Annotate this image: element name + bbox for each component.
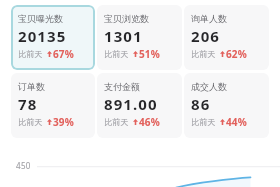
staticText: 询单人数 bbox=[191, 13, 227, 24]
staticText: 宝贝浏览数 bbox=[104, 13, 149, 24]
staticText: 62% bbox=[226, 47, 247, 61]
staticText: 比前天 bbox=[191, 49, 216, 59]
staticText: 1301 bbox=[104, 26, 143, 46]
staticText: 44% bbox=[226, 115, 247, 129]
button[interactable]: 宝贝浏览数 bbox=[97, 5, 182, 70]
staticText: 20135 bbox=[18, 26, 67, 46]
staticText: 67% bbox=[53, 47, 74, 61]
staticText: 450 bbox=[16, 160, 31, 171]
staticText: 39% bbox=[53, 115, 74, 129]
staticText: 比前天 bbox=[104, 117, 129, 127]
button[interactable]: 订单数 bbox=[11, 73, 95, 138]
staticText: 46% bbox=[139, 115, 160, 129]
button[interactable]: 成交人数 bbox=[184, 73, 269, 138]
staticText: 支付金额 bbox=[104, 81, 140, 92]
button[interactable]: 宝贝曝光数 bbox=[11, 5, 95, 70]
staticText: 比前天 bbox=[104, 49, 129, 59]
staticText: 比前天 bbox=[18, 49, 43, 59]
staticText: 比前天 bbox=[191, 117, 216, 127]
staticText: 宝贝曝光数 bbox=[18, 13, 63, 24]
staticText: 订单数 bbox=[18, 81, 45, 92]
button[interactable]: 询单人数 bbox=[184, 5, 269, 70]
staticText: 51% bbox=[139, 47, 160, 61]
staticText: 78 bbox=[18, 94, 38, 114]
button[interactable]: 支付金额 bbox=[97, 73, 182, 138]
staticText: 206 bbox=[191, 26, 221, 46]
staticText: 比前天 bbox=[18, 117, 43, 127]
staticText: 891.00 bbox=[104, 94, 158, 114]
staticText: 成交人数 bbox=[191, 81, 227, 92]
staticText: 86 bbox=[191, 94, 211, 114]
